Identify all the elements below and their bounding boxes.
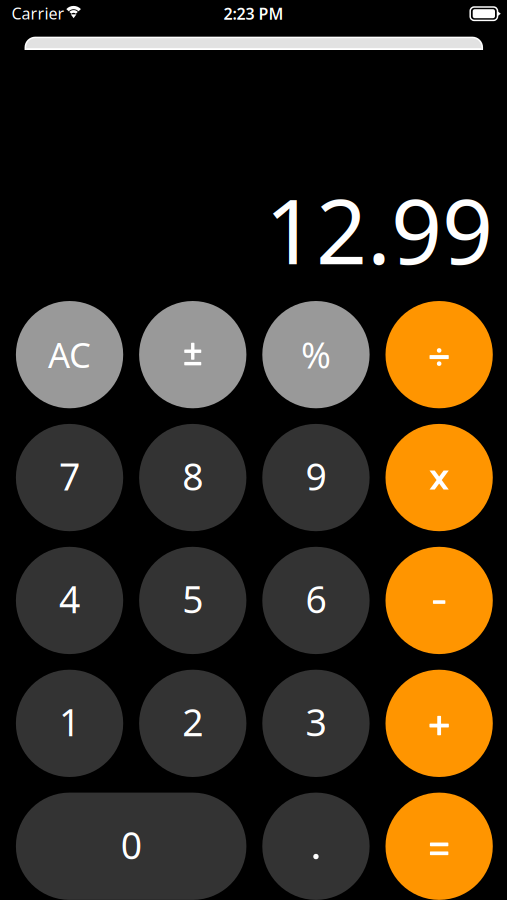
staticText: 1 — [59, 697, 80, 747]
staticText: 8 — [182, 451, 203, 501]
button[interactable]: Equals — [385, 793, 493, 900]
button[interactable]: Divide — [385, 301, 493, 408]
button[interactable]: Decimal point — [262, 793, 370, 900]
staticText: % — [301, 331, 331, 378]
button[interactable]: 2 — [139, 670, 246, 777]
staticText: AC — [48, 332, 91, 378]
button[interactable]: Plus — [385, 670, 493, 777]
staticText: 5 — [182, 574, 203, 624]
button[interactable]: Plus minus — [139, 301, 246, 408]
button[interactable]: 5 — [139, 547, 246, 654]
button[interactable]: 7 — [16, 424, 123, 531]
button[interactable]: 0 — [16, 793, 246, 900]
button[interactable]: 1 — [16, 670, 123, 777]
staticText: 0 — [121, 820, 142, 869]
button[interactable]: Multiply — [385, 424, 493, 531]
staticText: 6 — [305, 574, 326, 624]
staticText: 4 — [59, 574, 80, 624]
staticText: 3 — [305, 697, 326, 747]
button[interactable]: 6 — [262, 547, 370, 654]
button[interactable]: AC — [16, 301, 123, 408]
button[interactable]: 3 — [262, 670, 370, 777]
button[interactable]: 9 — [262, 424, 370, 531]
button[interactable]: % — [262, 301, 370, 408]
button[interactable]: 8 — [139, 424, 246, 531]
staticText: 7 — [59, 451, 80, 501]
button[interactable]: 4 — [16, 547, 123, 654]
staticText: 9 — [305, 451, 326, 501]
staticText: 2:23 PM — [223, 3, 283, 24]
button[interactable]: Minus — [385, 547, 493, 654]
staticText: 2 — [182, 697, 203, 747]
staticText: 12.99 — [265, 170, 493, 289]
staticText: Carrier — [11, 3, 64, 24]
